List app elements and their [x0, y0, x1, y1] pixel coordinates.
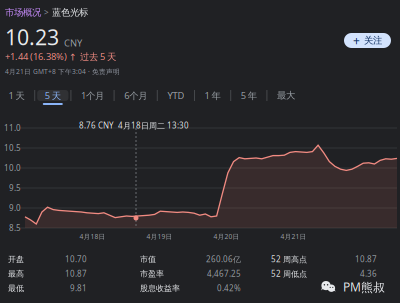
staticText: > [44, 7, 49, 18]
staticText: 1 年 [205, 89, 221, 102]
staticText: 关注 [364, 35, 382, 46]
staticText: 市盈率 [140, 269, 164, 279]
staticText: 最高 [8, 269, 24, 279]
staticText: 4.36 [360, 268, 377, 279]
staticText: 10.87 [355, 254, 377, 264]
staticText: 4月20日 [213, 232, 239, 241]
staticText: 10.5 [4, 143, 21, 153]
staticText: 8.5 [9, 223, 21, 233]
staticText: 10.87 [65, 268, 87, 279]
staticText: 4,467.25 [207, 268, 241, 279]
staticText: 9.5 [9, 183, 21, 193]
staticText: 1个月 [81, 89, 104, 102]
staticText: 最低 [8, 283, 24, 293]
staticText: 市场概况 [5, 7, 41, 18]
staticText: 蓝色光标 [52, 7, 88, 18]
staticText: 股息收益率 [140, 283, 180, 293]
staticText: 开盘 [8, 254, 24, 264]
staticText: PM熊叔 [343, 279, 385, 295]
staticText: 4月21日 [280, 232, 306, 241]
button[interactable]: 5 年 [233, 90, 264, 105]
staticText: 5 年 [241, 89, 257, 102]
staticText: YTD [167, 89, 184, 102]
staticText: +1.44 (16.38%) ↑ 过去 5 天 [5, 50, 116, 63]
button[interactable]: 6个月 [117, 90, 155, 105]
staticText: 9.0 [9, 203, 21, 213]
staticText: 11.0 [4, 123, 21, 133]
staticText: 9.81 [70, 283, 87, 293]
staticText: CNY [64, 37, 82, 49]
button[interactable]: 1 天 [1, 90, 32, 105]
staticText: 6个月 [124, 89, 147, 102]
staticText: 0.42% [217, 283, 241, 293]
staticText: 4月19日 [146, 232, 172, 241]
staticText: 最大 [277, 90, 295, 101]
staticText: 市值 [140, 254, 156, 264]
staticText: 260.06亿 [206, 254, 241, 264]
button[interactable]: YTD [160, 90, 192, 105]
button[interactable]: + [344, 33, 391, 48]
staticText: 10.70 [65, 254, 87, 264]
staticText: 4月21日 GMT+8 下午3:04 · 免责声明 [5, 67, 120, 76]
staticText: 8.76 CNY 4月18日周二 13:30 [79, 120, 189, 131]
button[interactable]: 最大 [269, 90, 303, 105]
button[interactable]: 5 天 [37, 90, 68, 105]
staticText: 10.23 [5, 23, 59, 51]
button[interactable]: 1个月 [73, 90, 112, 105]
staticText: 1 天 [9, 89, 25, 102]
staticText: 5 天 [45, 89, 61, 102]
staticText: + [353, 32, 360, 48]
button[interactable]: 1 年 [197, 90, 228, 105]
staticText: 52 周高点 [271, 254, 307, 264]
staticText: 52 周低点 [271, 268, 307, 279]
button[interactable]: 市场概况 [5, 7, 41, 18]
staticText: 4月18日 [79, 232, 105, 241]
staticText: 10.0 [4, 163, 21, 173]
